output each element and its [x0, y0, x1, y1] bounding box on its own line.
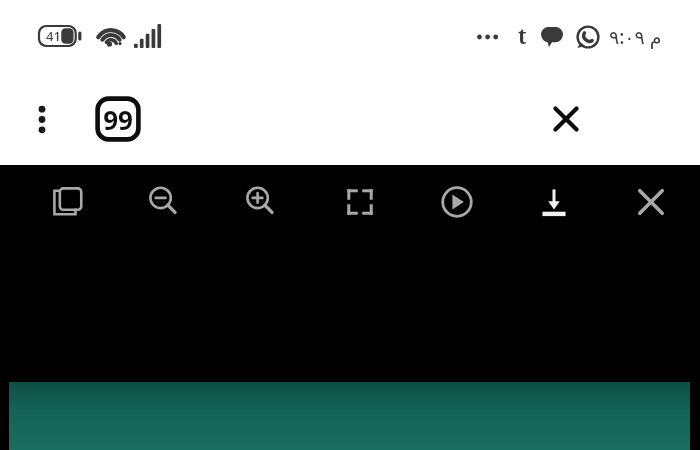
button[interactable]: Page 99: [92, 94, 144, 144]
button[interactable]: Download: [528, 176, 580, 228]
button[interactable]: Fullscreen: [334, 176, 386, 228]
button[interactable]: Close: [540, 93, 592, 145]
staticText: 99: [103, 102, 133, 137]
button[interactable]: Zoom in: [235, 176, 287, 228]
staticText: t: [518, 22, 527, 51]
button[interactable]: Copy: [42, 176, 94, 228]
button[interactable]: More options: [20, 97, 64, 141]
button[interactable]: Zoom out: [138, 176, 190, 228]
staticText: 41: [46, 27, 61, 45]
button[interactable]: Play: [431, 176, 483, 228]
staticText: م ٩:٠٩: [609, 24, 662, 50]
button[interactable]: Close: [625, 176, 677, 228]
